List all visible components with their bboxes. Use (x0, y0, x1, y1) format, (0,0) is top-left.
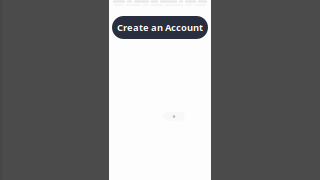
button[interactable]: Create an Account (112, 16, 208, 39)
staticText: Create an Account (117, 21, 203, 34)
